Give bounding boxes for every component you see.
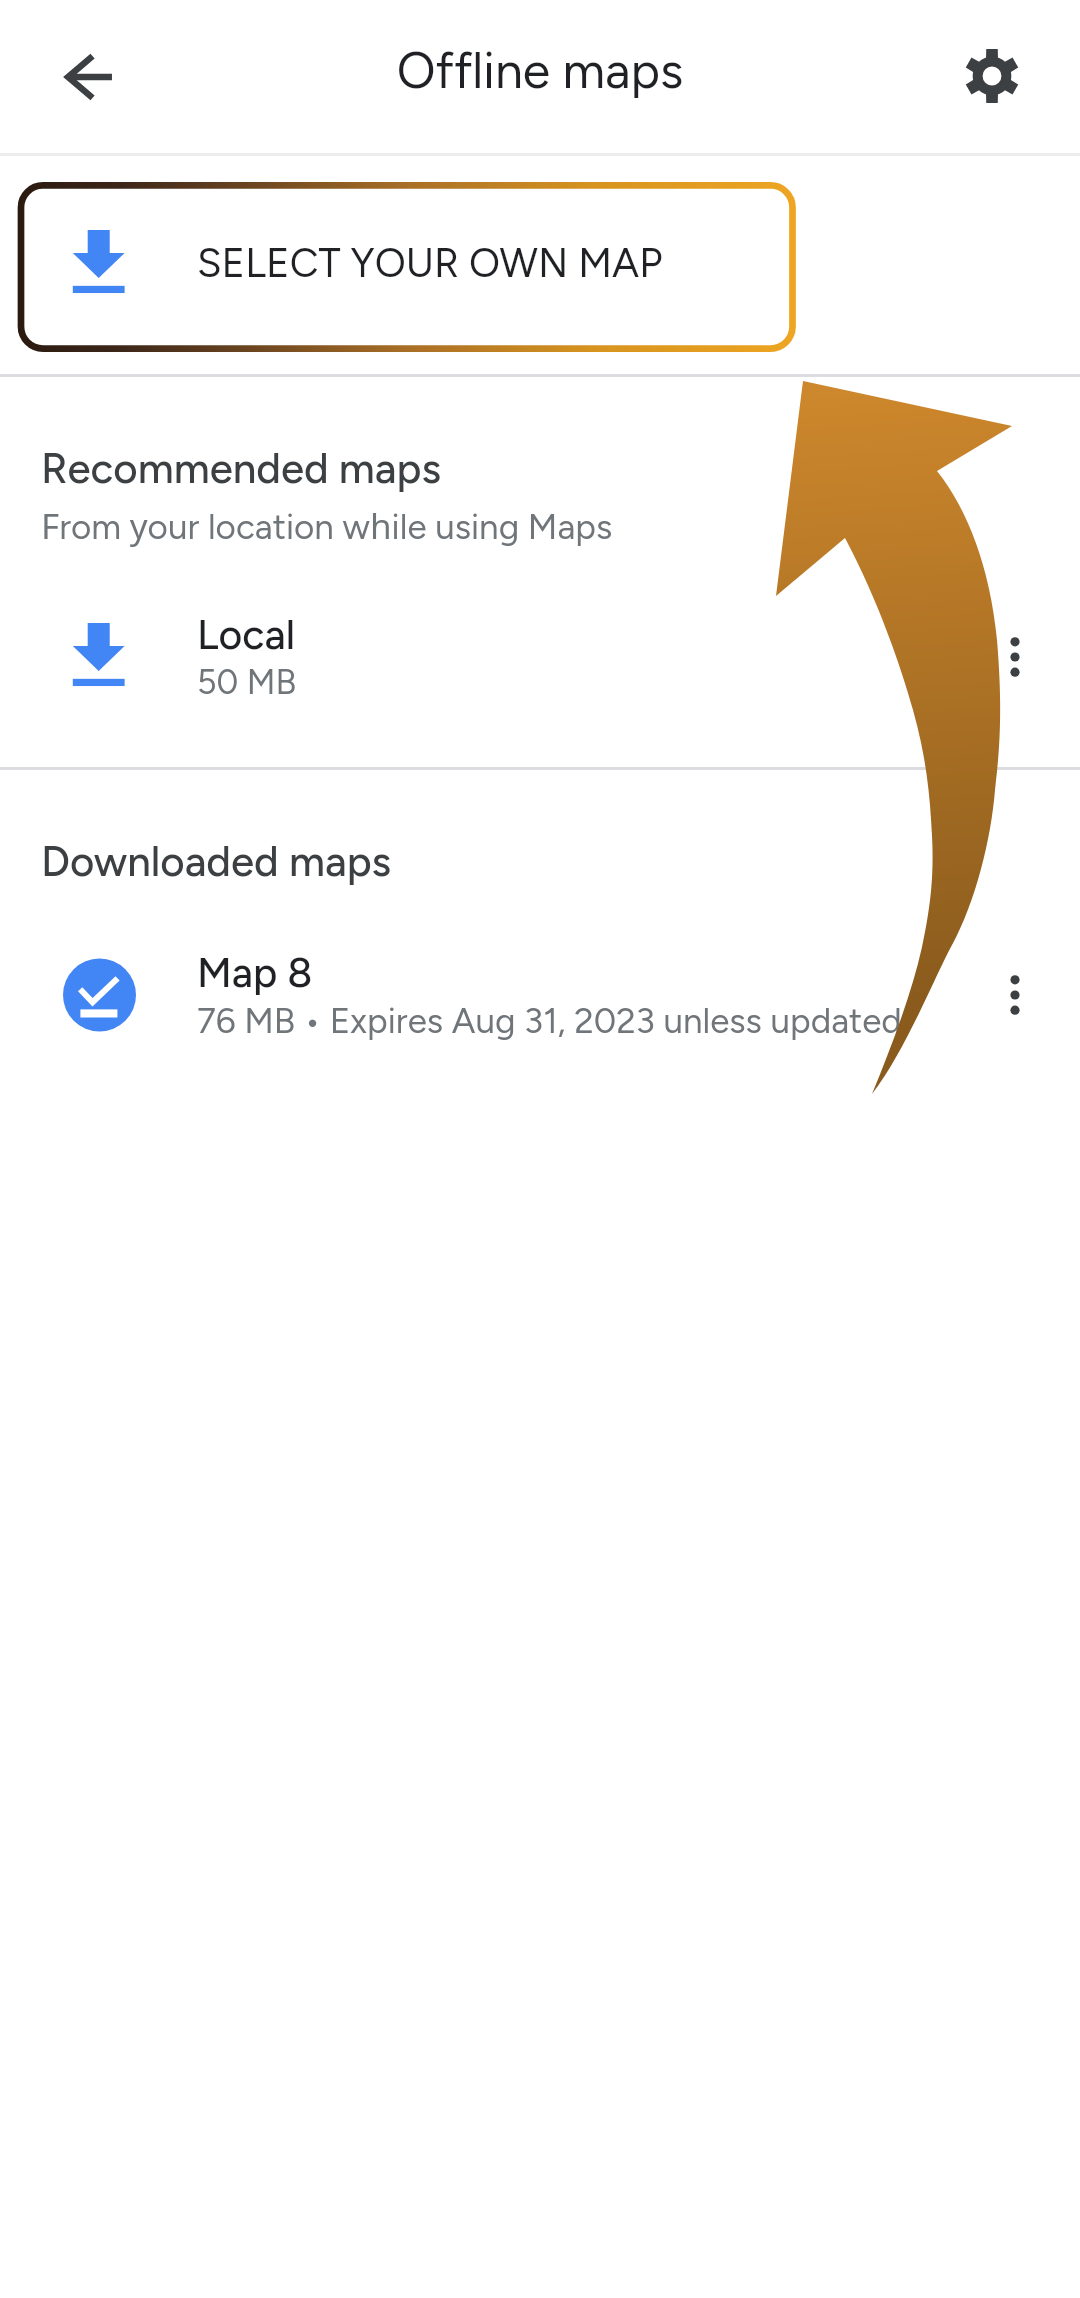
button[interactable]: Local [0, 592, 1080, 722]
button[interactable]: More options for Map 8 [965, 945, 1065, 1045]
staticText: Offline maps [0, 40, 1080, 100]
staticText: SELECT YOUR OWN MAP [197, 234, 663, 288]
staticText: Map 8 [197, 948, 313, 997]
button[interactable]: Back [35, 22, 145, 132]
button[interactable]: More options for Local [965, 607, 1065, 707]
staticText: Recommended maps [41, 443, 442, 493]
button[interactable]: Map 8 [0, 930, 1080, 1060]
staticText: 76 MB • Expires Aug 31, 2023 unless upda… [197, 1000, 902, 1042]
staticText: From your location while using Maps [41, 502, 613, 550]
button[interactable]: Settings [937, 21, 1047, 131]
button[interactable]: SELECT YOUR OWN MAP [0, 154, 1080, 375]
staticText: 50 MB [197, 662, 297, 703]
staticText: Local [197, 610, 295, 659]
staticText: Downloaded maps [41, 836, 392, 886]
